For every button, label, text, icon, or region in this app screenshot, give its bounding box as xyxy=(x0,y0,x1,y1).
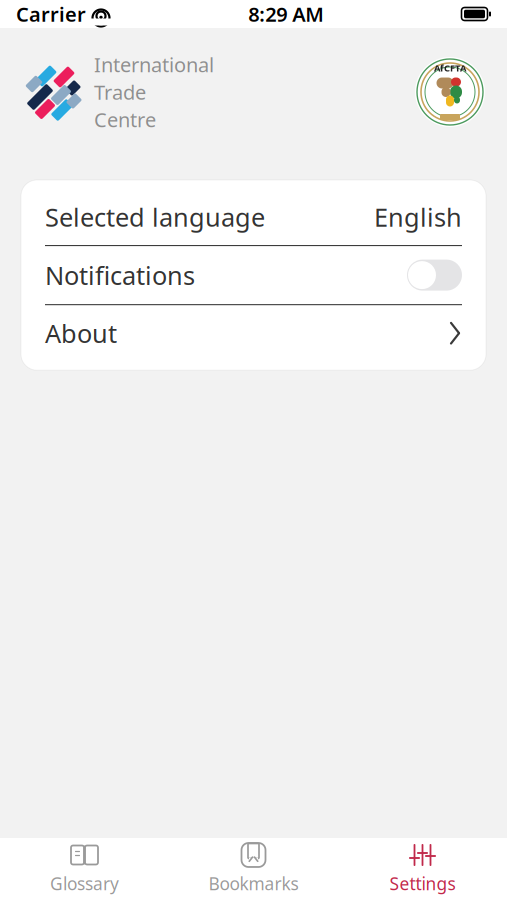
staticText: Notifications xyxy=(45,258,195,292)
staticText: AfCFTA xyxy=(434,62,466,74)
staticText: Glossary xyxy=(50,872,119,895)
staticText: 8:29 AM xyxy=(248,1,324,27)
staticText: Bookmarks xyxy=(208,872,298,895)
staticText: Settings xyxy=(389,872,455,895)
staticText: International xyxy=(94,51,214,78)
staticText: Trade xyxy=(94,79,146,105)
staticText: Selected language xyxy=(45,200,265,234)
button[interactable]: Settings xyxy=(338,838,507,900)
button[interactable]: Notifications xyxy=(21,246,486,304)
staticText: Carrier xyxy=(16,1,86,27)
staticText: Centre xyxy=(94,106,156,133)
button[interactable]: About xyxy=(21,305,486,361)
staticText: English xyxy=(374,200,462,234)
button[interactable]: Glossary xyxy=(0,838,169,900)
staticText: About xyxy=(45,316,117,350)
button[interactable]: Selected language xyxy=(21,189,486,245)
button[interactable]: Bookmarks xyxy=(169,838,338,900)
